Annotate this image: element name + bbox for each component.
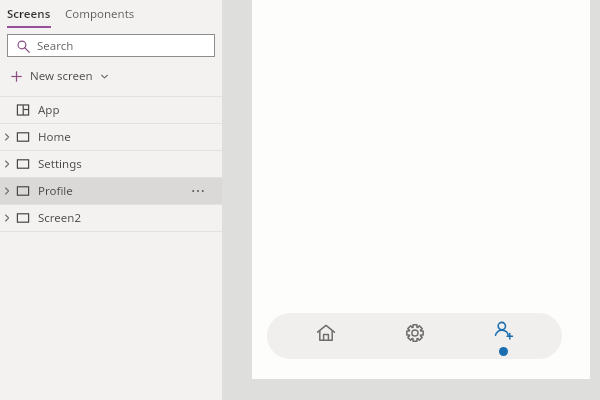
staticText: Profile bbox=[38, 183, 73, 199]
button[interactable]: Home bbox=[296, 313, 356, 359]
button[interactable]: New screen bbox=[0, 66, 222, 86]
button[interactable]: Search bbox=[7, 34, 215, 57]
staticText: New screen bbox=[30, 68, 93, 84]
button[interactable]: Profile, add person bbox=[473, 313, 533, 359]
button[interactable]: Home bbox=[0, 124, 222, 150]
button[interactable]: Settings bbox=[0, 151, 222, 177]
staticText: Settings bbox=[38, 156, 82, 172]
staticText: Search bbox=[37, 38, 74, 54]
button[interactable]: Screens bbox=[5, 6, 53, 28]
button[interactable]: Screen2 bbox=[0, 205, 222, 231]
button[interactable]: Settings bbox=[385, 313, 445, 359]
staticText: Home bbox=[38, 129, 71, 145]
staticText: Components bbox=[65, 6, 135, 22]
staticText: Screens bbox=[7, 6, 51, 22]
button[interactable]: Components bbox=[65, 6, 135, 28]
staticText: App bbox=[38, 102, 60, 118]
button[interactable]: Profile bbox=[0, 178, 222, 204]
button[interactable]: App bbox=[0, 97, 222, 123]
staticText: Screen2 bbox=[38, 210, 82, 226]
